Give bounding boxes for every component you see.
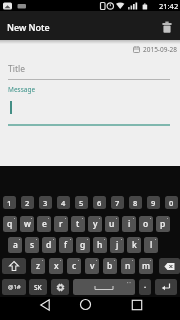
staticText: p: [160, 218, 166, 230]
staticText: y: [93, 218, 98, 230]
staticText: a: [13, 239, 18, 251]
staticText: k: [132, 239, 137, 251]
button[interactable]: b: [103, 258, 117, 274]
button[interactable]: x: [49, 258, 63, 274]
button[interactable]: [159, 19, 175, 35]
button[interactable]: 6: [93, 196, 106, 209]
button[interactable]: 8: [129, 196, 142, 209]
button[interactable]: e: [37, 216, 51, 232]
button[interactable]: [2, 258, 26, 274]
staticText: .: [144, 280, 147, 290]
staticText: v: [90, 260, 95, 272]
staticText: r: [59, 218, 63, 230]
button[interactable]: 7: [111, 196, 124, 209]
button[interactable]: 2: [21, 196, 34, 209]
button[interactable]: 2015-09-28: [133, 45, 177, 54]
button[interactable]: 1: [3, 196, 16, 209]
staticText: @1#: [8, 283, 21, 291]
button[interactable]: Message: [0, 83, 180, 125]
staticText: Title: [8, 63, 25, 75]
button[interactable]: t: [71, 216, 85, 232]
button[interactable]: 3: [39, 196, 52, 209]
button[interactable]: [73, 279, 135, 295]
button[interactable]: i: [122, 216, 136, 232]
staticText: l: [150, 239, 153, 251]
button[interactable]: s: [25, 237, 39, 253]
button[interactable]: d: [42, 237, 56, 253]
button[interactable]: y: [88, 216, 102, 232]
staticText: e: [42, 218, 47, 230]
button[interactable]: k: [127, 237, 141, 253]
staticText: 7: [115, 198, 120, 208]
button[interactable]: 0: [165, 196, 178, 209]
staticText: SK: [34, 283, 42, 292]
button[interactable]: w: [20, 216, 34, 232]
staticText: 2015-09-28: [143, 45, 177, 54]
button[interactable]: z: [31, 258, 45, 274]
staticText: i: [128, 218, 131, 230]
staticText: t: [76, 218, 80, 230]
button[interactable]: 5: [75, 196, 88, 209]
staticText: New Note: [7, 21, 50, 33]
button[interactable]: [79, 298, 92, 311]
staticText: q: [7, 218, 13, 230]
button[interactable]: u: [105, 216, 119, 232]
button[interactable]: [155, 279, 177, 295]
staticText: g: [80, 239, 86, 251]
button[interactable]: [130, 298, 143, 311]
staticText: 8: [133, 198, 138, 208]
staticText: z: [36, 260, 41, 272]
staticText: 1: [7, 198, 12, 208]
button[interactable]: f: [59, 237, 73, 253]
staticText: x: [54, 260, 59, 272]
staticText: 6: [97, 198, 102, 208]
staticText: Message: [8, 85, 36, 94]
button[interactable]: c: [67, 258, 81, 274]
button[interactable]: [159, 258, 180, 274]
button[interactable]: o: [139, 216, 153, 232]
staticText: c: [72, 260, 77, 272]
button[interactable]: [51, 279, 69, 295]
staticText: d: [46, 239, 52, 251]
button[interactable]: v: [85, 258, 99, 274]
staticText: n: [125, 260, 131, 272]
staticText: u: [109, 218, 115, 230]
button[interactable]: 9: [147, 196, 160, 209]
staticText: 2: [25, 198, 30, 208]
button[interactable]: @1#: [2, 279, 26, 295]
button[interactable]: m: [139, 258, 153, 274]
button[interactable]: j: [110, 237, 124, 253]
button[interactable]: q: [3, 216, 17, 232]
button[interactable]: l: [144, 237, 158, 253]
staticText: 3: [43, 198, 48, 208]
staticText: 9: [151, 198, 156, 208]
staticText: b: [107, 260, 113, 272]
staticText: 0: [169, 198, 174, 208]
staticText: m: [142, 260, 151, 272]
staticText: 21:42: [159, 1, 179, 11]
staticText: 4: [61, 198, 66, 208]
button[interactable]: [38, 298, 51, 311]
staticText: s: [30, 239, 35, 251]
button[interactable]: .: [139, 279, 151, 295]
staticText: j: [116, 239, 119, 251]
button[interactable]: g: [76, 237, 90, 253]
button[interactable]: n: [121, 258, 135, 274]
button[interactable]: Title: [0, 58, 180, 80]
staticText: 5: [79, 198, 84, 208]
button[interactable]: p: [156, 216, 170, 232]
button[interactable]: h: [93, 237, 107, 253]
button[interactable]: 4: [57, 196, 70, 209]
staticText: f: [64, 239, 68, 251]
staticText: o: [143, 218, 149, 230]
button[interactable]: a: [8, 237, 22, 253]
button[interactable]: r: [54, 216, 68, 232]
staticText: h: [97, 239, 103, 251]
staticText: w: [24, 218, 31, 230]
button[interactable]: SK: [29, 279, 47, 295]
